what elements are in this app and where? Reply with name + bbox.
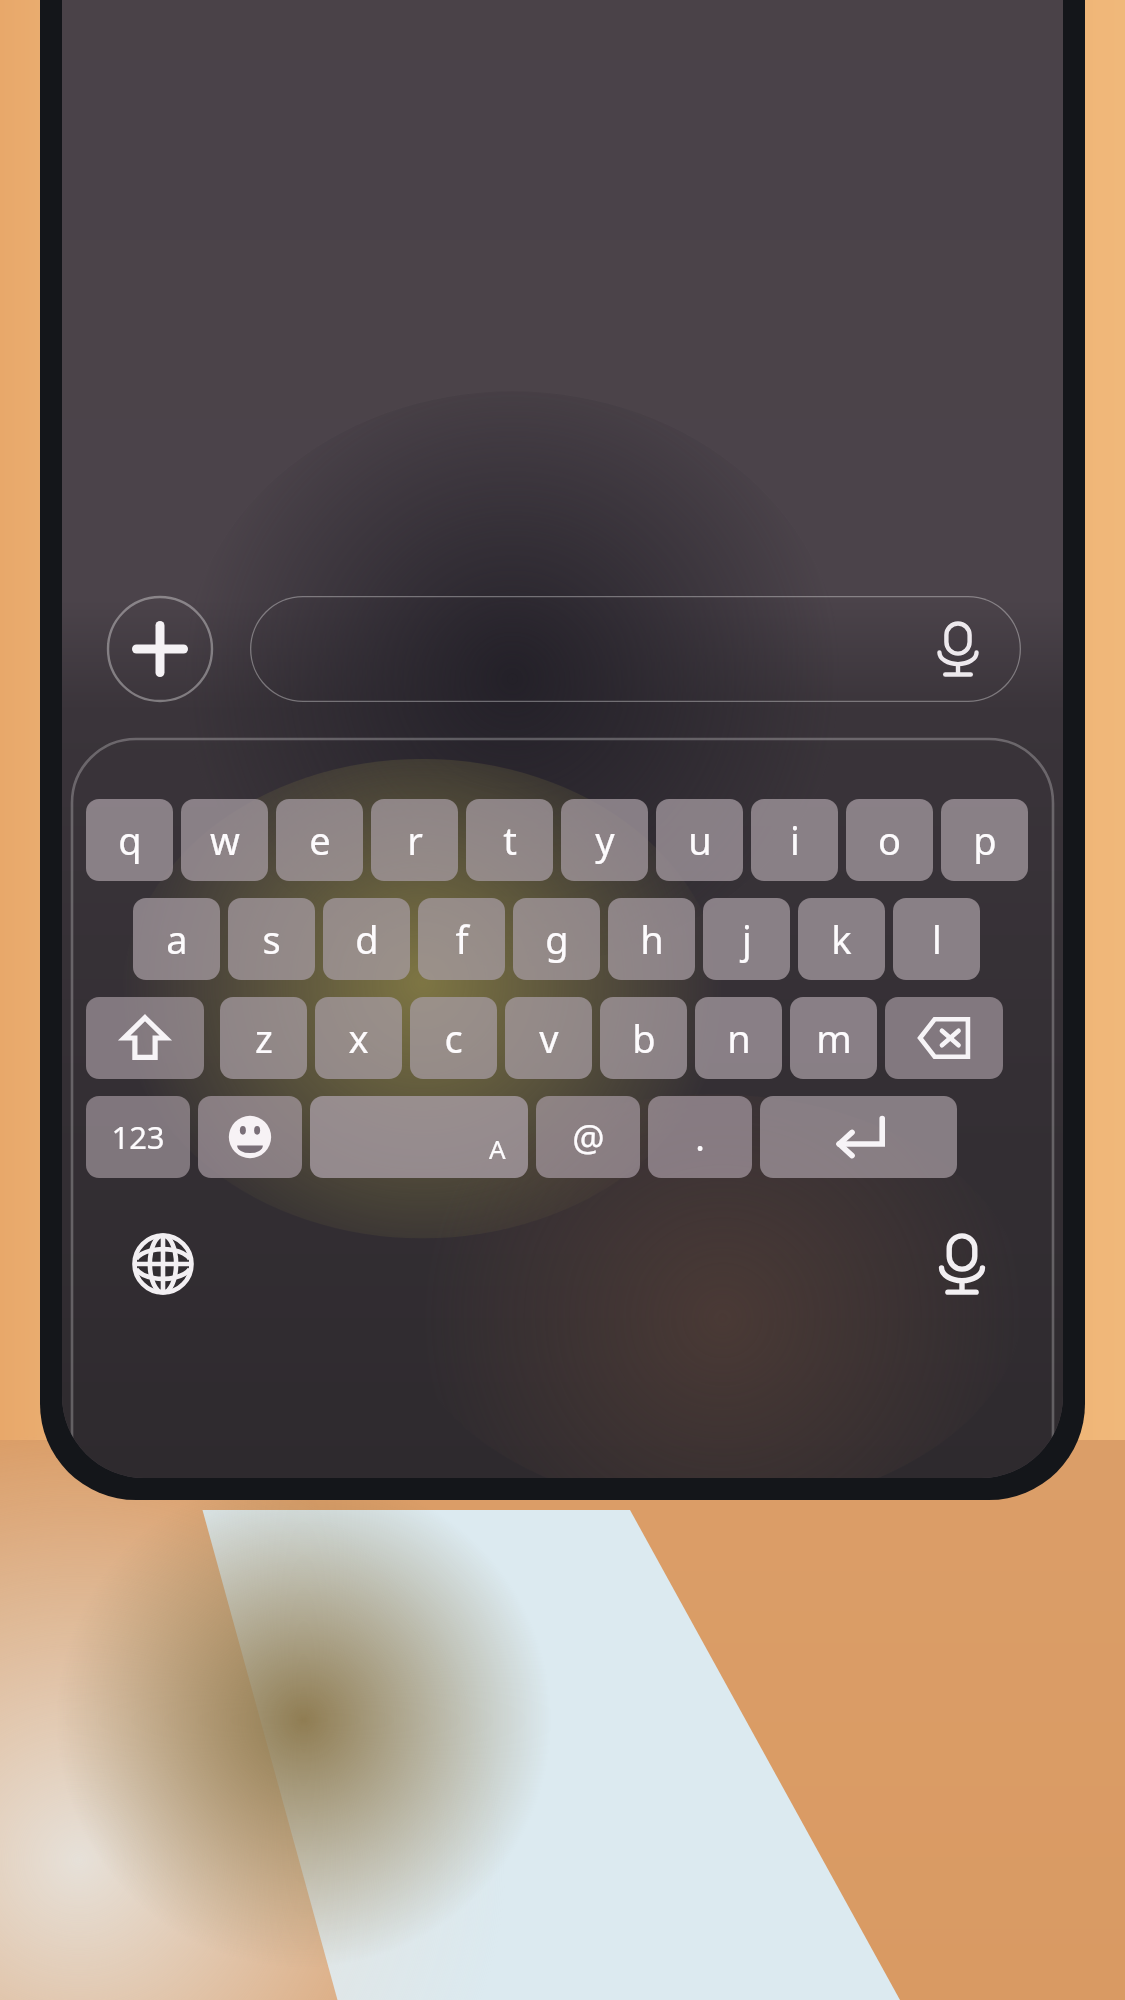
staticText: a [166, 913, 188, 965]
button[interactable]: a [133, 898, 220, 980]
staticText: A [489, 1131, 506, 1166]
button[interactable]: o [846, 799, 933, 881]
button[interactable]: n [695, 997, 782, 1079]
staticText: @ [572, 1113, 605, 1162]
staticText: o [878, 814, 901, 866]
button[interactable]: Voice typing [923, 1225, 1001, 1303]
button[interactable]: Add attachment [104, 593, 216, 705]
staticText: w [210, 814, 240, 866]
button[interactable]: u [656, 799, 743, 881]
staticText: k [831, 913, 852, 965]
staticText: j [742, 913, 752, 965]
staticText: p [973, 814, 997, 866]
staticText: s [262, 913, 281, 965]
button[interactable]: w [181, 799, 268, 881]
staticText: g [545, 913, 569, 965]
staticText: i [790, 814, 800, 866]
button[interactable]: d [323, 898, 410, 980]
button[interactable]: v [505, 997, 592, 1079]
staticText: b [632, 1012, 656, 1064]
staticText: n [727, 1012, 751, 1064]
staticText: m [816, 1012, 852, 1064]
button[interactable]: x [315, 997, 402, 1079]
staticText: x [348, 1012, 369, 1064]
button[interactable]: r [371, 799, 458, 881]
staticText: d [355, 913, 379, 965]
button[interactable]: . [648, 1096, 752, 1178]
staticText: f [455, 913, 469, 965]
button[interactable]: Backspace [885, 997, 1003, 1079]
button[interactable]: q [86, 799, 173, 881]
button[interactable]: z [220, 997, 307, 1079]
button[interactable]: Enter [760, 1096, 957, 1178]
button[interactable]: g [513, 898, 600, 980]
staticText: u [688, 814, 712, 866]
button[interactable]: f [418, 898, 505, 980]
staticText: y [595, 814, 615, 866]
button[interactable]: c [410, 997, 497, 1079]
staticText: q [118, 814, 142, 866]
button[interactable]: h [608, 898, 695, 980]
staticText: t [503, 814, 517, 866]
button[interactable]: Change language [124, 1225, 202, 1303]
staticText: c [444, 1012, 463, 1064]
button[interactable]: e [276, 799, 363, 881]
button[interactable]: b [600, 997, 687, 1079]
button[interactable]: y [561, 799, 648, 881]
staticText: l [932, 913, 942, 965]
button[interactable]: Shift [86, 997, 204, 1079]
button[interactable]: 123 [86, 1096, 190, 1178]
button[interactable]: Voice input [250, 596, 1021, 702]
button[interactable]: p [941, 799, 1028, 881]
staticText: . [695, 1113, 705, 1162]
staticText: h [640, 913, 664, 965]
button[interactable]: s [228, 898, 315, 980]
button[interactable]: j [703, 898, 790, 980]
staticText: 123 [111, 1116, 165, 1158]
staticText: e [309, 814, 331, 866]
button[interactable]: m [790, 997, 877, 1079]
staticText: r [407, 814, 423, 866]
button[interactable]: Space [310, 1096, 528, 1178]
button[interactable]: t [466, 799, 553, 881]
button[interactable]: l [893, 898, 980, 980]
staticText: v [539, 1012, 559, 1064]
button[interactable]: @ [536, 1096, 640, 1178]
staticText: z [255, 1012, 273, 1064]
button[interactable]: Voice input [929, 620, 987, 678]
button[interactable]: i [751, 799, 838, 881]
button[interactable]: k [798, 898, 885, 980]
button[interactable]: Emoji [198, 1096, 302, 1178]
